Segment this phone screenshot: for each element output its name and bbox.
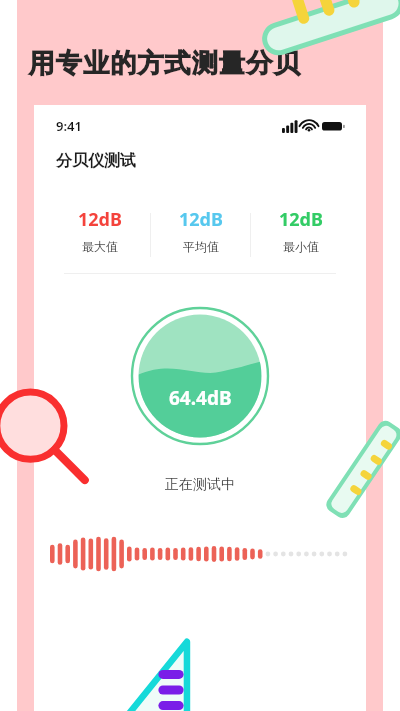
staticText: 12dB (179, 207, 223, 232)
staticText: 64.4dB (169, 385, 232, 411)
staticText: 12dB (279, 207, 323, 232)
staticText: 12dB (78, 207, 122, 232)
staticText: 最小值 (283, 239, 319, 254)
staticText: 用专业的方式测量分贝 (28, 47, 300, 80)
button[interactable]: 12dB (50, 207, 150, 263)
button[interactable]: 12dB (151, 207, 250, 263)
button[interactable]: 12dB (251, 207, 350, 263)
staticText: 分贝仪测试 (56, 151, 136, 171)
staticText: 平均值 (183, 239, 219, 254)
staticText: 最大值 (82, 239, 118, 254)
staticText: 正在测试中 (34, 476, 366, 494)
staticText: 9:41 (56, 117, 82, 135)
other: Status (282, 120, 344, 133)
button[interactable]: Decibel gauge (130, 306, 270, 446)
